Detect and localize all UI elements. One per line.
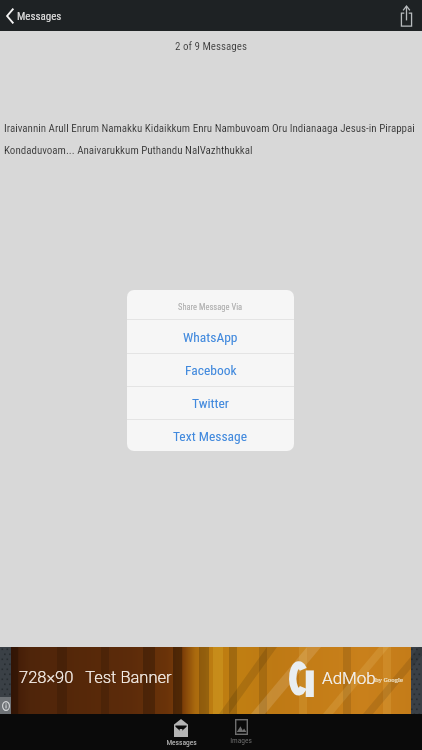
button[interactable]: Messages (151, 719, 211, 747)
staticText: 728×90 Test Banner (19, 668, 172, 687)
staticText: 2 of 9 Messages (0, 40, 422, 53)
staticText: Twitter (192, 395, 229, 411)
staticText: Images (230, 736, 252, 745)
button[interactable]: Images (211, 719, 271, 745)
staticText: Messages (17, 10, 62, 23)
staticText: Share Message Via (178, 302, 243, 312)
staticText: AdMob (322, 668, 376, 688)
button[interactable]: Text Message (127, 420, 294, 451)
staticText: WhatsApp (183, 329, 238, 345)
button[interactable]: Twitter (127, 387, 294, 419)
button[interactable]: Facebook (127, 354, 294, 386)
staticText: by Google (375, 676, 404, 684)
button[interactable]: 728×90 Test Banner (11, 647, 411, 714)
staticText: Messages (166, 738, 197, 747)
staticText: Iraivannin Arull Enrum Namakku Kidaikkum… (4, 122, 419, 157)
button[interactable]: Share (398, 3, 414, 28)
button[interactable]: WhatsApp (127, 320, 294, 353)
staticText: Text Message (173, 428, 248, 444)
staticText: Facebook (185, 362, 237, 378)
button[interactable]: Messages (6, 8, 62, 24)
